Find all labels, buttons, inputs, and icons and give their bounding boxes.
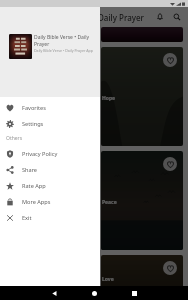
- staticText: Daily Bible Verse • Daily Prayer App: [34, 48, 94, 53]
- button[interactable]: Back: [47, 286, 61, 300]
- button[interactable]: Hope: [101, 47, 183, 146]
- button[interactable]: Peace: [101, 151, 183, 250]
- button[interactable]: Exit: [0, 210, 100, 226]
- button[interactable]: Favorite: [163, 261, 177, 275]
- button[interactable]: Share: [0, 162, 100, 178]
- staticText: Favorites: [22, 104, 46, 112]
- staticText: Daily Bible Verse • Daily Prayer: [34, 34, 99, 48]
- staticText: Others: [6, 135, 23, 142]
- button[interactable]: Favorite: [163, 157, 177, 171]
- staticText: Peace: [102, 199, 117, 206]
- staticText: Settings: [22, 120, 44, 128]
- button[interactable]: Search: [170, 10, 184, 24]
- button[interactable]: Settings: [0, 116, 100, 132]
- staticText: More Apps: [22, 198, 51, 206]
- button[interactable]: Love: [101, 255, 183, 300]
- staticText: Privacy Policy: [22, 150, 58, 158]
- button[interactable]: Privacy Policy: [0, 146, 100, 162]
- staticText: Exit: [22, 214, 32, 222]
- staticText: Daily Prayer: [98, 12, 144, 23]
- button[interactable]: Recents: [127, 286, 141, 300]
- staticText: Share: [22, 166, 38, 174]
- button[interactable]: Favorite: [163, 53, 177, 67]
- button[interactable]: More Apps: [0, 194, 100, 210]
- button[interactable]: Rate App: [0, 178, 100, 194]
- button[interactable]: Home: [87, 286, 101, 300]
- button[interactable]: Favorites: [0, 100, 100, 116]
- button[interactable]: Notifications: [153, 10, 167, 24]
- staticText: Rate App: [22, 182, 46, 190]
- staticText: Love: [102, 276, 114, 283]
- staticText: Hope: [102, 95, 116, 102]
